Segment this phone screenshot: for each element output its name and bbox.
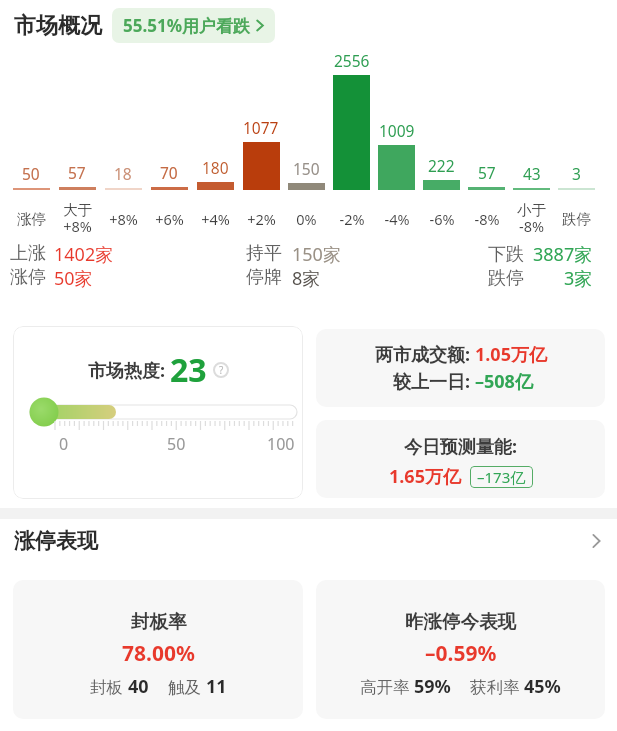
staticText: 1.05万亿 (475, 342, 547, 367)
staticText: 1.65万亿 (389, 464, 461, 489)
staticText: 1009 (379, 120, 415, 141)
staticText: 持平 (246, 242, 282, 265)
staticText: 3家 (564, 266, 593, 290)
staticText: 45% (524, 674, 561, 699)
staticText: 市场热度: (88, 358, 170, 383)
staticText: 触及 (168, 675, 206, 698)
staticText: +8% (109, 209, 138, 229)
staticText: 43 (523, 163, 541, 184)
staticText: 50 (167, 433, 186, 455)
staticText: 78.00% (122, 639, 195, 668)
staticText: 50 (22, 163, 40, 184)
staticText: -2% (339, 209, 365, 229)
staticText: 180 (202, 157, 229, 178)
staticText: ? (219, 363, 224, 377)
staticText: 0% (296, 209, 317, 229)
staticText: 跌停 (488, 267, 524, 290)
staticText: –0.59% (425, 639, 497, 668)
staticText: 40 (128, 674, 149, 699)
staticText: +2% (247, 209, 276, 229)
staticText: 57 (68, 162, 86, 183)
staticText: 今日预测量能: (404, 434, 518, 459)
staticText: 涨停表现 (14, 528, 98, 554)
staticText: –508亿 (475, 369, 533, 394)
staticText: 222 (428, 155, 455, 176)
button[interactable]: 市场热度: (13, 326, 303, 499)
staticText: 市场概况 (14, 12, 102, 40)
staticText: 跌停 (562, 210, 591, 228)
button[interactable]: 封板率 (13, 580, 303, 719)
staticText: 昨涨停今表现 (405, 610, 516, 633)
staticText: 3887家 (533, 242, 593, 266)
staticText: 高开率 (360, 675, 414, 698)
staticText: +4% (201, 209, 230, 229)
staticText: –173亿 (477, 467, 526, 487)
staticText: 150 (293, 158, 320, 179)
staticText: 8家 (292, 266, 321, 290)
staticText: 23 (170, 348, 207, 392)
staticText: -8% (474, 209, 500, 229)
staticText: 18 (114, 163, 132, 184)
staticText: +6% (155, 209, 184, 229)
staticText: 封板 (90, 675, 128, 698)
staticText: 停牌 (246, 266, 282, 289)
staticText: 1402家 (54, 242, 114, 266)
button[interactable]: 55.51%用户看跌 (112, 8, 275, 43)
staticText: 2556 (334, 50, 370, 71)
button[interactable]: 两市成交额: (316, 329, 605, 407)
button[interactable]: 昨涨停今表现 (316, 580, 605, 719)
staticText: 封板率 (131, 610, 187, 633)
staticText: 涨停 (10, 266, 46, 289)
staticText: 100 (267, 433, 295, 455)
button[interactable]: 涨停表现 (14, 528, 601, 554)
staticText: 大于 +8% (63, 201, 92, 237)
staticText: 70 (160, 162, 178, 183)
staticText: 55.51%用户看跌 (123, 14, 251, 37)
staticText: 3 (572, 163, 581, 184)
staticText: 小于 -8% (517, 201, 546, 237)
staticText: 涨停 (17, 210, 46, 228)
staticText: 获利率 (470, 675, 524, 698)
staticText: 上涨 (10, 242, 46, 265)
staticText: 59% (414, 674, 451, 699)
staticText: 0 (59, 433, 69, 455)
staticText: 较上一日: (393, 369, 475, 394)
button[interactable]: 今日预测量能: (316, 420, 605, 498)
staticText: 1077 (243, 117, 279, 138)
staticText: -4% (384, 209, 410, 229)
staticText: 50家 (54, 266, 93, 290)
staticText: -6% (429, 209, 455, 229)
staticText: 两市成交额: (375, 342, 475, 367)
staticText: 11 (206, 674, 227, 699)
staticText: 57 (478, 162, 496, 183)
staticText: 150家 (292, 242, 341, 266)
staticText: 下跌 (488, 243, 524, 266)
